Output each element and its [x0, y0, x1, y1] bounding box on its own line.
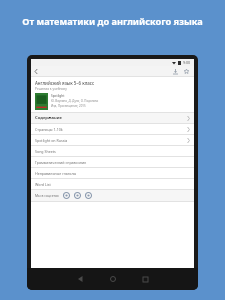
button[interactable]: Английский язык 5–6 класс [31, 77, 194, 112]
button[interactable]: Spotlight on Russia [31, 135, 194, 145]
staticText: Ю. Ваулина, Д. Дули, О. Подоляко [51, 99, 99, 103]
staticText: От математики до английского языка [22, 15, 203, 28]
button[interactable]: Содержание [31, 113, 194, 123]
button[interactable]: Back [31, 66, 42, 77]
button[interactable]: Грамматический справочник [31, 157, 194, 167]
button[interactable]: Song Sheets [31, 146, 194, 156]
staticText: Грамматический справочник [35, 160, 87, 165]
staticText: Изд. Просвещение, 2015 [51, 104, 86, 108]
button[interactable]: Odnoklassniki [74, 192, 81, 199]
staticText: 9:00 [183, 60, 191, 65]
staticText: Содержание [35, 115, 63, 121]
staticText: Spotlight on Russia [35, 138, 68, 143]
staticText: Неправильные глаголы [35, 171, 77, 176]
staticText: Страницы 1-10k [35, 127, 63, 132]
button[interactable]: Twitter [85, 192, 92, 199]
button[interactable]: VKontakte [63, 192, 70, 199]
staticText: Решения к учебнику [35, 87, 67, 91]
button[interactable]: Home [97, 268, 129, 290]
button[interactable]: Неправильные глаголы [31, 168, 194, 178]
button[interactable]: Страницы 1-10k [31, 124, 194, 134]
staticText: Song Sheets [35, 149, 56, 154]
staticText: Spotlight [51, 94, 65, 98]
button[interactable]: Favorite [181, 66, 192, 77]
button[interactable]: Recent apps [129, 268, 161, 290]
button[interactable]: Back [65, 268, 97, 290]
staticText: Английский язык 5–6 класс [35, 80, 95, 86]
staticText: Мы в соцсетях [35, 193, 59, 198]
button[interactable]: Download [170, 66, 181, 77]
button[interactable]: Word List [31, 179, 194, 189]
staticText: Word List [35, 182, 51, 187]
